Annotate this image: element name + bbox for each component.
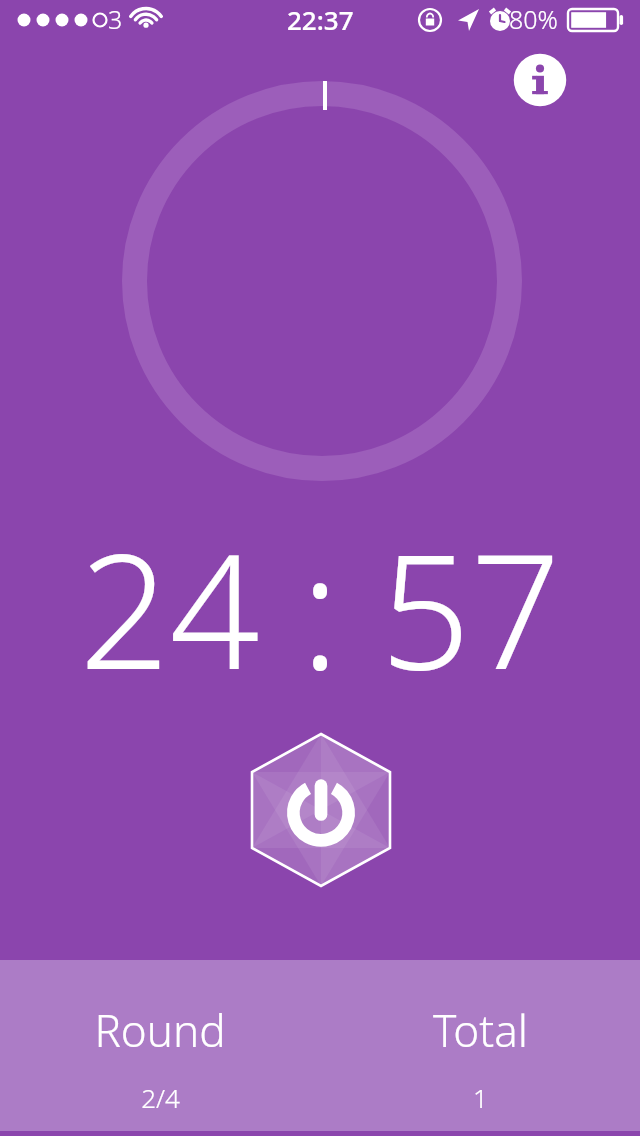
staticText: 2/4 — [141, 1080, 180, 1115]
button[interactable]: Total — [320, 960, 640, 1131]
button[interactable]: Info — [508, 48, 572, 112]
staticText: 22:37 — [287, 2, 354, 37]
button[interactable]: Round — [0, 960, 320, 1131]
staticText: 24 : 57 — [79, 500, 561, 680]
staticText: 3 — [108, 2, 123, 36]
button[interactable]: Start or pause timer — [245, 728, 397, 892]
staticText: Total — [433, 1000, 528, 1060]
staticText: 80% — [509, 2, 558, 36]
staticText: 1 — [473, 1080, 488, 1115]
staticText: Round — [94, 1000, 226, 1060]
